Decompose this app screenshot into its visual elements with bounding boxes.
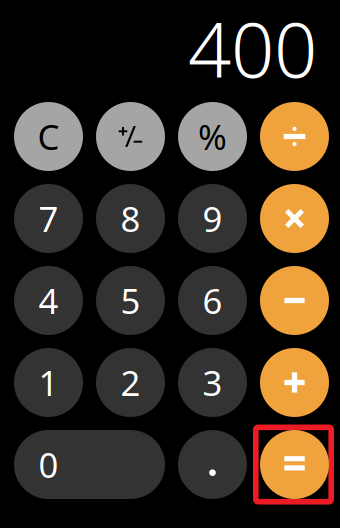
button[interactable]: Decimal point <box>178 430 247 499</box>
button[interactable]: 3 <box>178 348 247 417</box>
staticText: 8 <box>120 195 140 241</box>
staticText: 9 <box>202 195 222 241</box>
staticText: 400 <box>188 0 317 98</box>
staticText: 3 <box>202 359 222 405</box>
button[interactable]: % <box>178 102 247 171</box>
button[interactable]: 1 <box>14 348 83 417</box>
button[interactable]: Divide <box>260 102 329 171</box>
button[interactable]: 4 <box>14 266 83 335</box>
staticText: 2 <box>120 359 140 405</box>
button[interactable]: 7 <box>14 184 83 253</box>
button[interactable]: 2 <box>96 348 165 417</box>
button[interactable]: Add <box>260 348 329 417</box>
button[interactable]: Toggle sign <box>96 102 165 171</box>
staticText: 6 <box>202 277 222 323</box>
button[interactable]: Multiply <box>260 184 329 253</box>
button[interactable]: Equals <box>260 430 329 499</box>
button[interactable]: 5 <box>96 266 165 335</box>
staticText: C <box>37 113 59 159</box>
button[interactable]: C <box>14 102 83 171</box>
button[interactable]: 9 <box>178 184 247 253</box>
staticText: 5 <box>120 277 140 323</box>
staticText: % <box>198 113 227 159</box>
button[interactable]: 6 <box>178 266 247 335</box>
staticText: 0 <box>38 441 58 487</box>
staticText: 4 <box>38 277 58 323</box>
button[interactable]: Subtract <box>260 266 329 335</box>
staticText: 1 <box>38 359 58 405</box>
button[interactable]: 8 <box>96 184 165 253</box>
staticText: 7 <box>38 195 58 241</box>
button[interactable]: 0 <box>14 430 165 499</box>
